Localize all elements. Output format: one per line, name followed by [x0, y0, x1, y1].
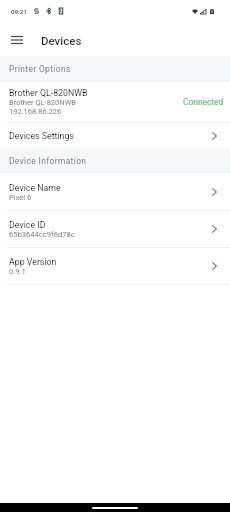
staticText: App Version	[9, 257, 57, 267]
staticText: Device Name	[9, 183, 61, 193]
button[interactable]: Open navigation menu	[0, 22, 32, 56]
staticText: Brother QL-820NWB	[9, 98, 76, 107]
staticText: Pixel 6	[9, 193, 32, 202]
button[interactable]: Devices Settings	[0, 123, 230, 148]
staticText: Connected	[183, 97, 224, 107]
staticText: 65b3644cc9f6d78c	[9, 230, 75, 239]
staticText: 0.9.1	[9, 267, 26, 276]
button[interactable]: Device ID	[0, 211, 230, 247]
staticText: Device ID	[9, 220, 46, 230]
staticText: Device Information	[9, 156, 87, 166]
button[interactable]: Brother QL-820NWB	[0, 82, 230, 122]
staticText: Devices	[41, 34, 82, 47]
staticText: 192.168.86.226	[9, 107, 62, 116]
staticText: 09:21	[11, 8, 27, 15]
button[interactable]: Device Name	[0, 174, 230, 210]
button[interactable]: App Version	[0, 248, 230, 284]
staticText: Devices Settings	[9, 131, 212, 141]
staticText: Brother QL-820NWB	[9, 88, 88, 98]
staticText: Printer Options	[9, 64, 71, 74]
